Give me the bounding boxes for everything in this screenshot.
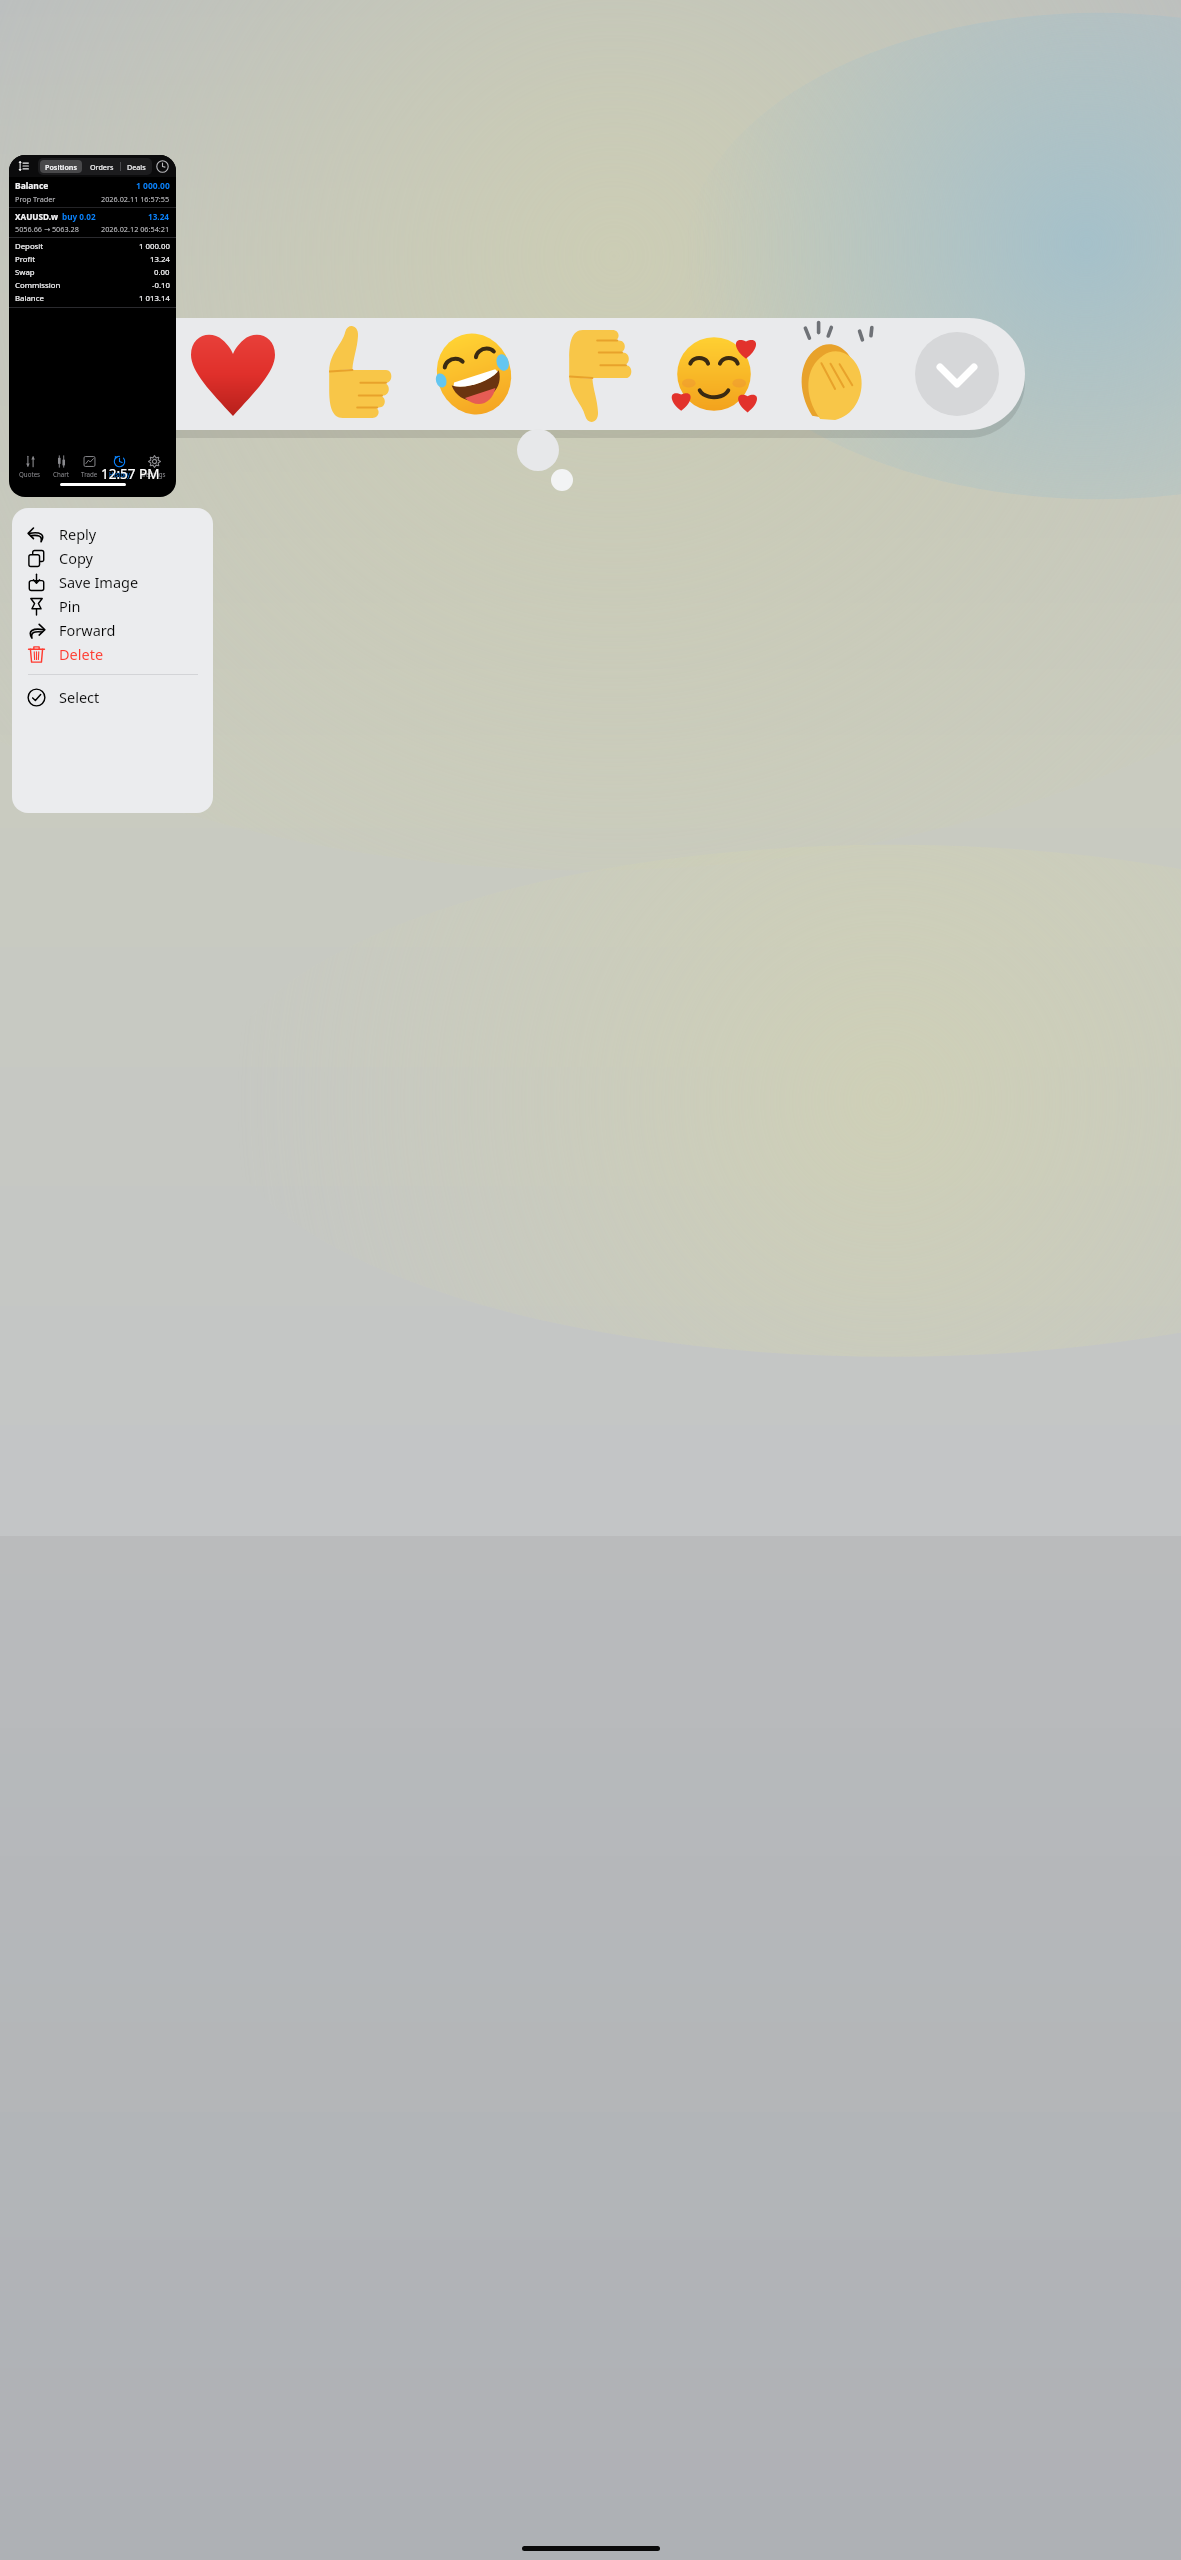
staticText: Commission bbox=[15, 280, 61, 291]
staticText: 13.24 bbox=[148, 211, 170, 222]
staticText: 1 013.14 bbox=[139, 293, 170, 304]
staticText: -0.10 bbox=[152, 280, 170, 291]
button[interactable]: Save Image bbox=[12, 570, 213, 594]
button[interactable]: Pin bbox=[12, 594, 213, 618]
staticText: Deposit bbox=[15, 241, 44, 252]
staticText: Prop Trader bbox=[15, 194, 56, 204]
button[interactable]: Settings bbox=[140, 455, 168, 478]
staticText: 2026.02.11 16:57:55 bbox=[101, 194, 170, 204]
staticText: Select bbox=[59, 687, 100, 707]
button[interactable]: Delete bbox=[12, 642, 213, 666]
staticText: 13.24 bbox=[150, 254, 170, 265]
staticText: Delete bbox=[59, 644, 104, 664]
staticText: Copy bbox=[59, 548, 93, 568]
staticText: Quotes bbox=[19, 470, 41, 478]
staticText: 0.00 bbox=[154, 267, 170, 278]
button[interactable]: Quotes bbox=[17, 455, 43, 478]
staticText: Forward bbox=[59, 620, 116, 640]
button[interactable]: History bbox=[107, 455, 132, 478]
button[interactable]: Positions bbox=[45, 162, 77, 171]
staticText: Orders bbox=[90, 162, 114, 172]
staticText: Balance bbox=[15, 180, 49, 192]
staticText: buy 0.02 bbox=[62, 211, 96, 222]
button[interactable]: Reply bbox=[12, 522, 213, 546]
staticText: Chart bbox=[53, 470, 69, 478]
staticText: 5056.66 → 5063.28 bbox=[15, 224, 79, 234]
button[interactable]: Trade bbox=[79, 455, 100, 478]
staticText: Swap bbox=[15, 267, 35, 278]
button[interactable]: Orders bbox=[90, 162, 114, 172]
staticText: Settings bbox=[142, 470, 166, 478]
staticText: XAUUSD.w bbox=[15, 211, 59, 222]
other: History bbox=[156, 160, 169, 173]
button[interactable]: Select bbox=[12, 685, 213, 709]
staticText: Profit bbox=[15, 254, 36, 265]
button[interactable]: Deals bbox=[127, 162, 146, 172]
staticText: 12:57 PM bbox=[101, 465, 160, 483]
staticText: Save Image bbox=[59, 572, 139, 592]
staticText: 1 000.00 bbox=[136, 180, 170, 192]
other: Sort bbox=[17, 160, 29, 172]
staticText: 1 000.00 bbox=[139, 241, 170, 252]
staticText: Pin bbox=[59, 596, 81, 616]
button[interactable]: Copy bbox=[12, 546, 213, 570]
button[interactable]: Forward bbox=[12, 618, 213, 642]
button[interactable]: Chart bbox=[51, 455, 71, 478]
staticText: Deals bbox=[127, 162, 146, 172]
staticText: Trade bbox=[81, 470, 98, 478]
staticText: Balance bbox=[15, 293, 44, 304]
staticText: 2026.02.12 06:54:21 bbox=[101, 224, 170, 234]
button[interactable]: Sort bbox=[9, 155, 176, 497]
staticText: Reply bbox=[59, 524, 97, 544]
staticText: Positions bbox=[45, 162, 77, 171]
staticText: History bbox=[109, 470, 130, 478]
